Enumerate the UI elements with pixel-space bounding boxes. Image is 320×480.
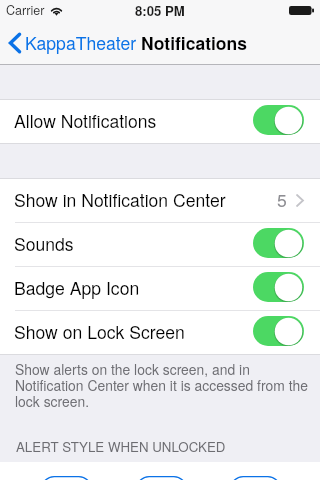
staticText: Badge App Icon <box>14 275 140 300</box>
button[interactable]: None <box>41 476 92 480</box>
staticText: Notifications <box>141 30 247 55</box>
staticText: 8:05 PM <box>135 1 185 20</box>
button[interactable]: Show in Notification Center <box>0 179 320 222</box>
staticText: Allow Notifications <box>14 108 157 133</box>
button[interactable]: Toggle <box>253 272 304 302</box>
staticText: Carrier <box>6 1 45 19</box>
button[interactable]: Allow Notifications <box>0 100 320 143</box>
staticText: Show alerts on the lock screen, and in N… <box>15 359 308 411</box>
button[interactable]: Toggle <box>253 316 304 346</box>
button[interactable]: KappaTheater <box>9 30 137 55</box>
button[interactable]: Sounds <box>0 223 320 266</box>
button[interactable]: Toggle <box>253 105 304 135</box>
button[interactable]: Toggle <box>253 228 304 258</box>
staticText: ALERT STYLE WHEN UNLOCKED <box>16 437 226 456</box>
staticText: Show on Lock Screen <box>14 319 185 344</box>
staticText: Sounds <box>14 231 74 256</box>
button[interactable]: Banners <box>136 476 187 480</box>
staticText: 5 <box>277 187 287 212</box>
staticText: KappaTheater <box>25 30 137 55</box>
button[interactable]: Alerts <box>230 476 281 480</box>
button[interactable]: Show on Lock Screen <box>0 311 320 354</box>
staticText: Show in Notification Center <box>14 187 226 212</box>
button[interactable]: Badge App Icon <box>0 267 320 310</box>
